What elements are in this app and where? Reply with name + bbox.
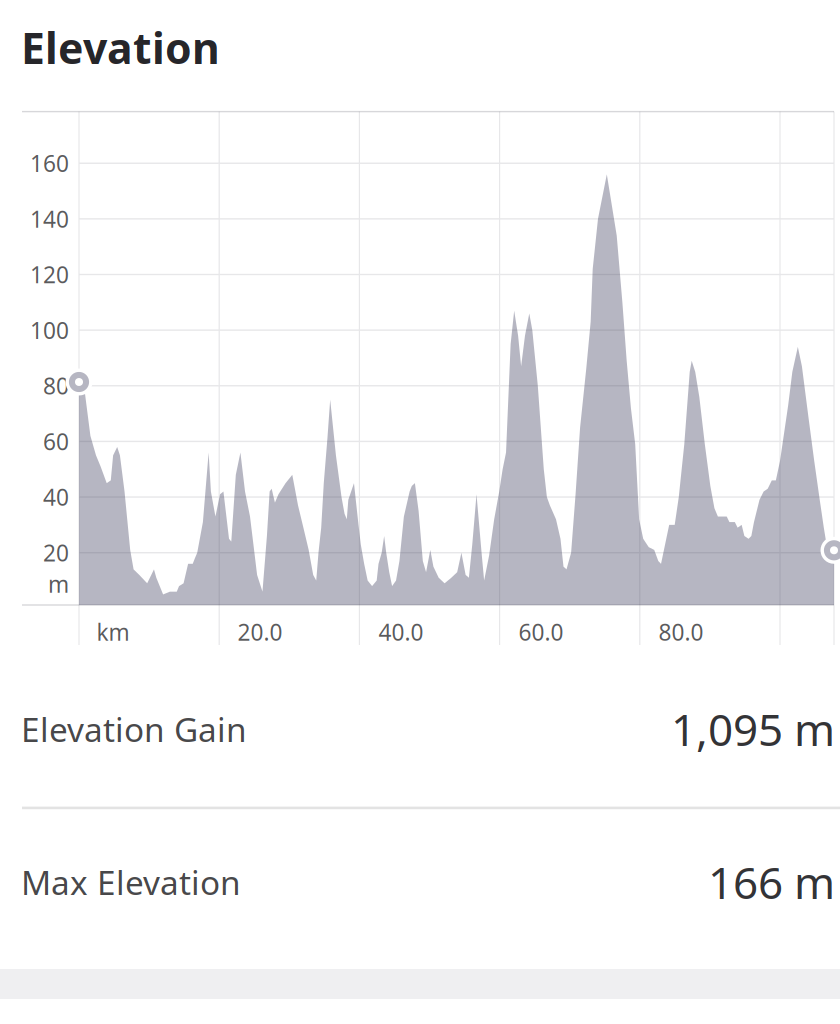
button[interactable]: Elevation Gain bbox=[0, 690, 840, 768]
staticText: 60.0 bbox=[518, 617, 563, 647]
staticText: 40.0 bbox=[378, 617, 423, 647]
staticText: 166 m bbox=[708, 853, 835, 911]
staticText: 40 bbox=[43, 482, 69, 512]
staticText: 80 bbox=[43, 371, 69, 401]
staticText: Elevation Gain bbox=[21, 707, 247, 751]
staticText: 140 bbox=[30, 204, 69, 234]
staticText: 1,095 m bbox=[671, 700, 835, 758]
button[interactable]: Max Elevation bbox=[0, 843, 840, 921]
staticText: 120 bbox=[30, 259, 69, 289]
staticText: Elevation bbox=[21, 19, 220, 76]
staticText: 160 bbox=[30, 148, 69, 178]
staticText: 80.0 bbox=[658, 617, 703, 647]
staticText: 60 bbox=[43, 426, 69, 456]
staticText: km bbox=[96, 617, 129, 647]
staticText: m bbox=[48, 569, 69, 599]
staticText: 100 bbox=[30, 315, 69, 345]
staticText: 20.0 bbox=[237, 617, 282, 647]
staticText: 20 bbox=[43, 538, 69, 568]
staticText: Max Elevation bbox=[21, 860, 241, 904]
